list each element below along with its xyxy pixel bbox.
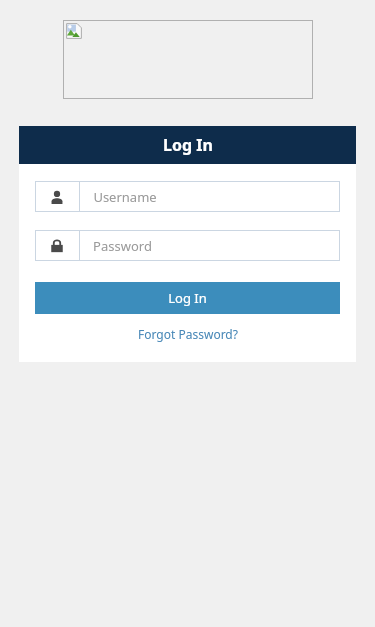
staticText: Log In: [168, 289, 207, 307]
other: Image: [66, 23, 82, 39]
staticText: Password: [93, 237, 152, 255]
button[interactable]: Password: [35, 230, 340, 261]
button[interactable]: Log In: [35, 282, 340, 314]
staticText: Forgot Password?: [138, 326, 238, 342]
other: Password: [50, 239, 64, 253]
other: Username: [50, 190, 64, 204]
staticText: Log In: [163, 134, 213, 156]
button[interactable]: Username: [35, 181, 340, 212]
button[interactable]: Forgot Password?: [35, 324, 340, 344]
staticText: Username: [93, 188, 157, 206]
